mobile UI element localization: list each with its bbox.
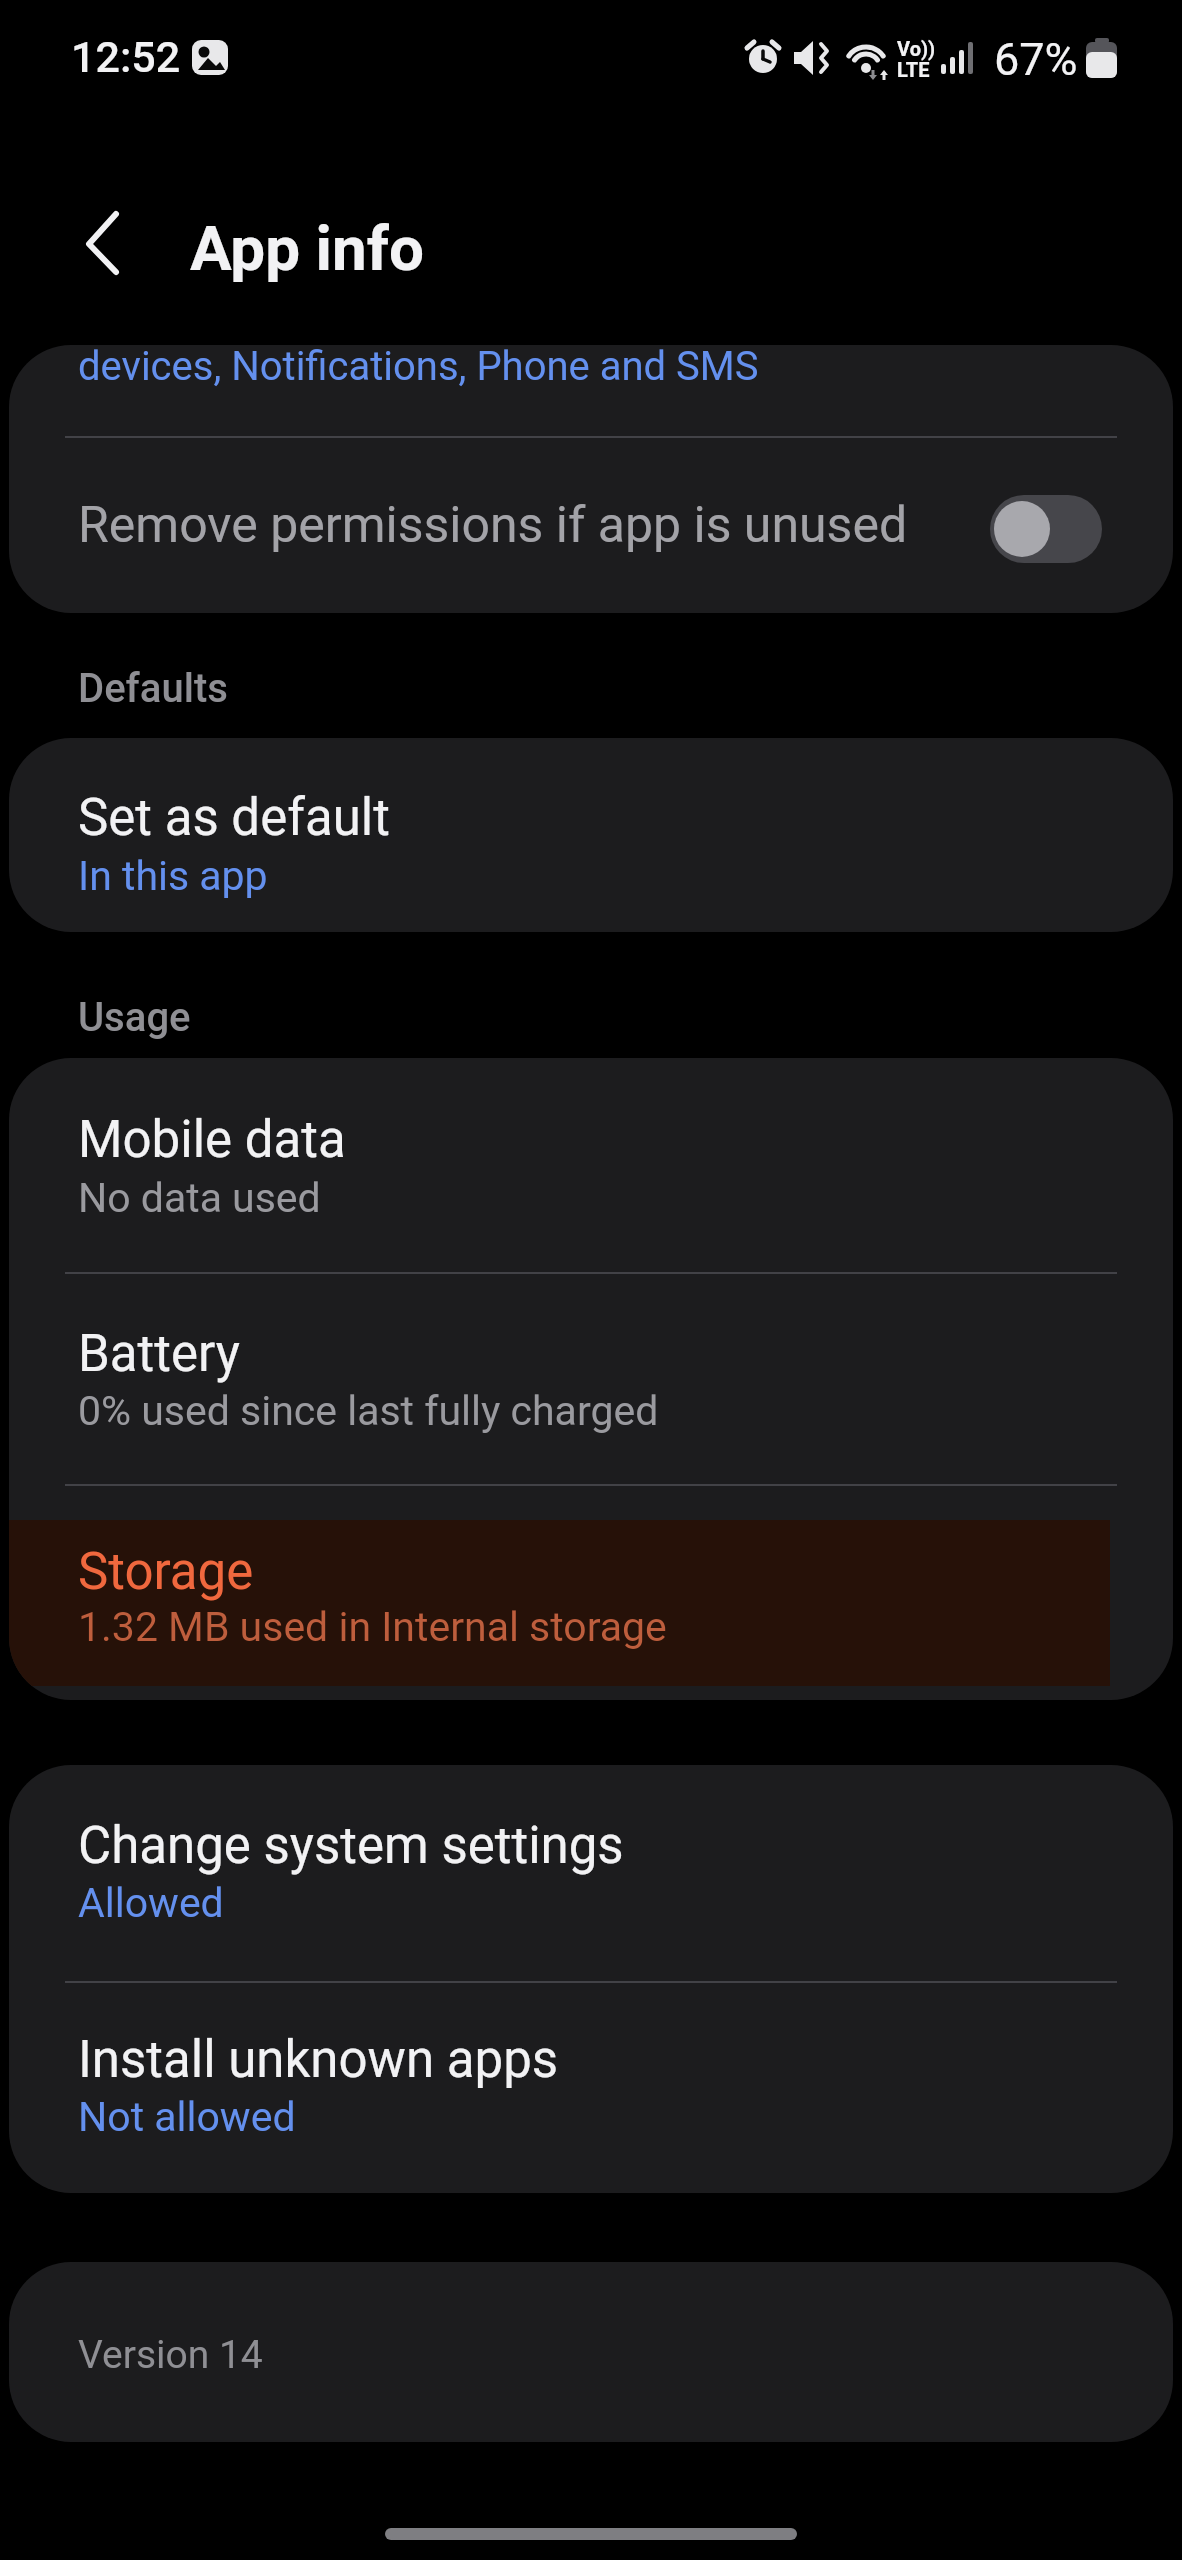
staticText: Remove permissions if app is unused (78, 496, 908, 555)
staticText: Vo)) (897, 37, 936, 60)
staticText: Version 14 (78, 2332, 263, 2378)
staticText: Battery (78, 1324, 240, 1384)
button[interactable]: Set as default (9, 738, 1173, 932)
staticText: 0% used since last fully charged (78, 1387, 659, 1435)
staticText: Allowed (78, 1879, 224, 1927)
staticText: Defaults (78, 665, 228, 712)
staticText: App info (190, 212, 424, 285)
button[interactable]: Change system settings (9, 1765, 1173, 1979)
staticText: 1.32 MB used in Internal storage (78, 1603, 667, 1651)
staticText: Usage (78, 994, 191, 1041)
button[interactable]: Version 14 (9, 2262, 1173, 2442)
staticText: In this app (78, 852, 268, 900)
staticText: Set as default (78, 788, 390, 848)
staticText: Change system settings (78, 1816, 624, 1876)
button[interactable]: Remove permissions if app is unused (9, 438, 1173, 609)
button[interactable] (70, 200, 160, 295)
button[interactable]: Mobile data (9, 1058, 1173, 1272)
button[interactable]: Storage (9, 1482, 1173, 1700)
button[interactable]: Install unknown apps (9, 1982, 1173, 2193)
staticText: 67% (994, 33, 1078, 86)
staticText: LTE (897, 58, 930, 81)
button[interactable]: Battery (9, 1273, 1173, 1481)
staticText: No data used (78, 1174, 321, 1222)
staticText: Storage (78, 1542, 254, 1602)
staticText: 12:52 (71, 32, 181, 82)
button[interactable]: devices, Notifications, Phone and SMS (9, 345, 1173, 437)
staticText: devices, Notifications, Phone and SMS (78, 345, 759, 390)
staticText: Not allowed (78, 2093, 296, 2141)
staticText: Mobile data (78, 1110, 346, 1170)
staticText: Install unknown apps (78, 2030, 559, 2090)
